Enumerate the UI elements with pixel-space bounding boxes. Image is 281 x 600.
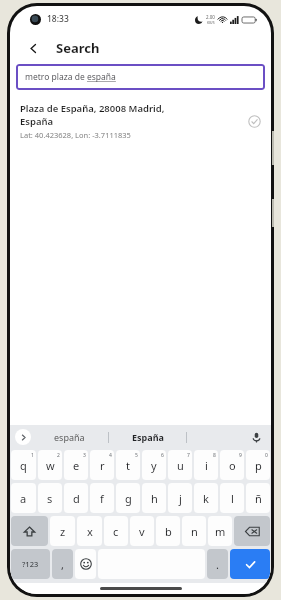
button[interactable]: b bbox=[156, 516, 180, 546]
staticText: t bbox=[126, 458, 130, 473]
staticText: p bbox=[255, 458, 262, 473]
staticText: n bbox=[191, 524, 198, 539]
button[interactable]: m bbox=[208, 516, 232, 546]
staticText: 0 bbox=[265, 452, 268, 459]
button[interactable]: t bbox=[116, 450, 140, 480]
button[interactable]: d bbox=[64, 483, 88, 513]
staticText: y bbox=[151, 458, 157, 473]
staticText: b bbox=[165, 524, 172, 539]
staticText: Plaza de España, 28008 Madrid, España bbox=[20, 102, 165, 128]
button[interactable]: Enter bbox=[230, 549, 270, 579]
button[interactable]: Back bbox=[20, 35, 46, 61]
button[interactable]: españa bbox=[31, 425, 108, 449]
staticText: d bbox=[73, 491, 80, 506]
staticText: v bbox=[139, 524, 145, 539]
staticText: l bbox=[231, 491, 234, 506]
button[interactable]: u bbox=[168, 450, 192, 480]
button[interactable]: , bbox=[52, 549, 73, 579]
staticText: 7 bbox=[187, 452, 190, 459]
button[interactable]: More suggestions bbox=[15, 429, 31, 445]
button[interactable]: Shift bbox=[11, 516, 48, 546]
staticText: 3 bbox=[83, 452, 86, 459]
staticText: KB/S bbox=[207, 20, 215, 25]
button[interactable]: y bbox=[142, 450, 166, 480]
staticText: j bbox=[179, 491, 182, 506]
button[interactable]: s bbox=[38, 483, 62, 513]
button[interactable]: i bbox=[194, 450, 218, 480]
button[interactable]: c bbox=[104, 516, 128, 546]
staticText: españa bbox=[87, 71, 116, 83]
staticText: z bbox=[60, 524, 66, 539]
button[interactable]: g bbox=[116, 483, 140, 513]
button[interactable]: Plaza de España, 28008 Madrid, España bbox=[10, 99, 271, 146]
button[interactable]: j bbox=[168, 483, 192, 513]
button[interactable]: España bbox=[109, 425, 186, 449]
staticText: a bbox=[20, 491, 27, 506]
button[interactable]: ?123 bbox=[11, 549, 50, 579]
staticText: 6 bbox=[161, 452, 164, 459]
staticText: q bbox=[20, 458, 27, 473]
staticText: e bbox=[73, 458, 80, 473]
staticText: 2 bbox=[57, 452, 60, 459]
button[interactable]: n bbox=[182, 516, 206, 546]
button[interactable]: f bbox=[90, 483, 114, 513]
button[interactable]: o bbox=[220, 450, 244, 480]
button[interactable]: a bbox=[11, 483, 36, 513]
staticText: 5 bbox=[135, 452, 138, 459]
staticText: x bbox=[87, 524, 93, 539]
staticText: c bbox=[113, 524, 119, 539]
button[interactable]: Backspace bbox=[234, 516, 270, 546]
staticText: ?123 bbox=[22, 559, 39, 569]
staticText: , bbox=[61, 557, 64, 572]
button[interactable]: q bbox=[11, 450, 36, 480]
staticText: Lat: 40.423628, Lon: -3.7111835 bbox=[20, 130, 131, 140]
button[interactable]: Voice input bbox=[245, 426, 267, 448]
button[interactable]: r bbox=[90, 450, 114, 480]
staticText: ñ bbox=[255, 491, 262, 506]
staticText: r bbox=[100, 458, 105, 473]
staticText: o bbox=[229, 458, 236, 473]
button[interactable]: w bbox=[38, 450, 62, 480]
staticText: metro plaza de bbox=[25, 71, 87, 83]
staticText: españa bbox=[54, 431, 85, 443]
staticText: 1 bbox=[31, 452, 34, 459]
staticText: . bbox=[216, 557, 219, 572]
button[interactable]: v bbox=[130, 516, 154, 546]
staticText: s bbox=[47, 491, 53, 506]
button[interactable]: z bbox=[50, 516, 75, 546]
staticText: 18:33 bbox=[47, 13, 69, 25]
button[interactable]: x bbox=[77, 516, 102, 546]
button[interactable]: . bbox=[207, 549, 228, 579]
staticText: g bbox=[125, 491, 132, 506]
button[interactable]: Emoji bbox=[75, 549, 96, 579]
staticText: m bbox=[215, 524, 226, 539]
staticText: 4 bbox=[109, 452, 112, 459]
button[interactable]: h bbox=[142, 483, 166, 513]
staticText: Search bbox=[56, 39, 100, 57]
staticText: i bbox=[205, 458, 208, 473]
staticText: k bbox=[203, 491, 209, 506]
staticText: u bbox=[177, 458, 184, 473]
staticText: 9 bbox=[239, 452, 242, 459]
button[interactable]: l bbox=[220, 483, 244, 513]
staticText: f bbox=[100, 491, 104, 506]
button[interactable]: k bbox=[194, 483, 218, 513]
button[interactable]: ñ bbox=[246, 483, 270, 513]
button[interactable]: metro plaza de bbox=[16, 64, 265, 90]
button[interactable]: e bbox=[64, 450, 88, 480]
staticText: w bbox=[46, 458, 55, 473]
staticText: España bbox=[132, 431, 164, 443]
staticText: h bbox=[151, 491, 158, 506]
button[interactable]: p bbox=[246, 450, 270, 480]
staticText: 8 bbox=[213, 452, 216, 459]
staticText: 2.00 bbox=[206, 14, 215, 20]
